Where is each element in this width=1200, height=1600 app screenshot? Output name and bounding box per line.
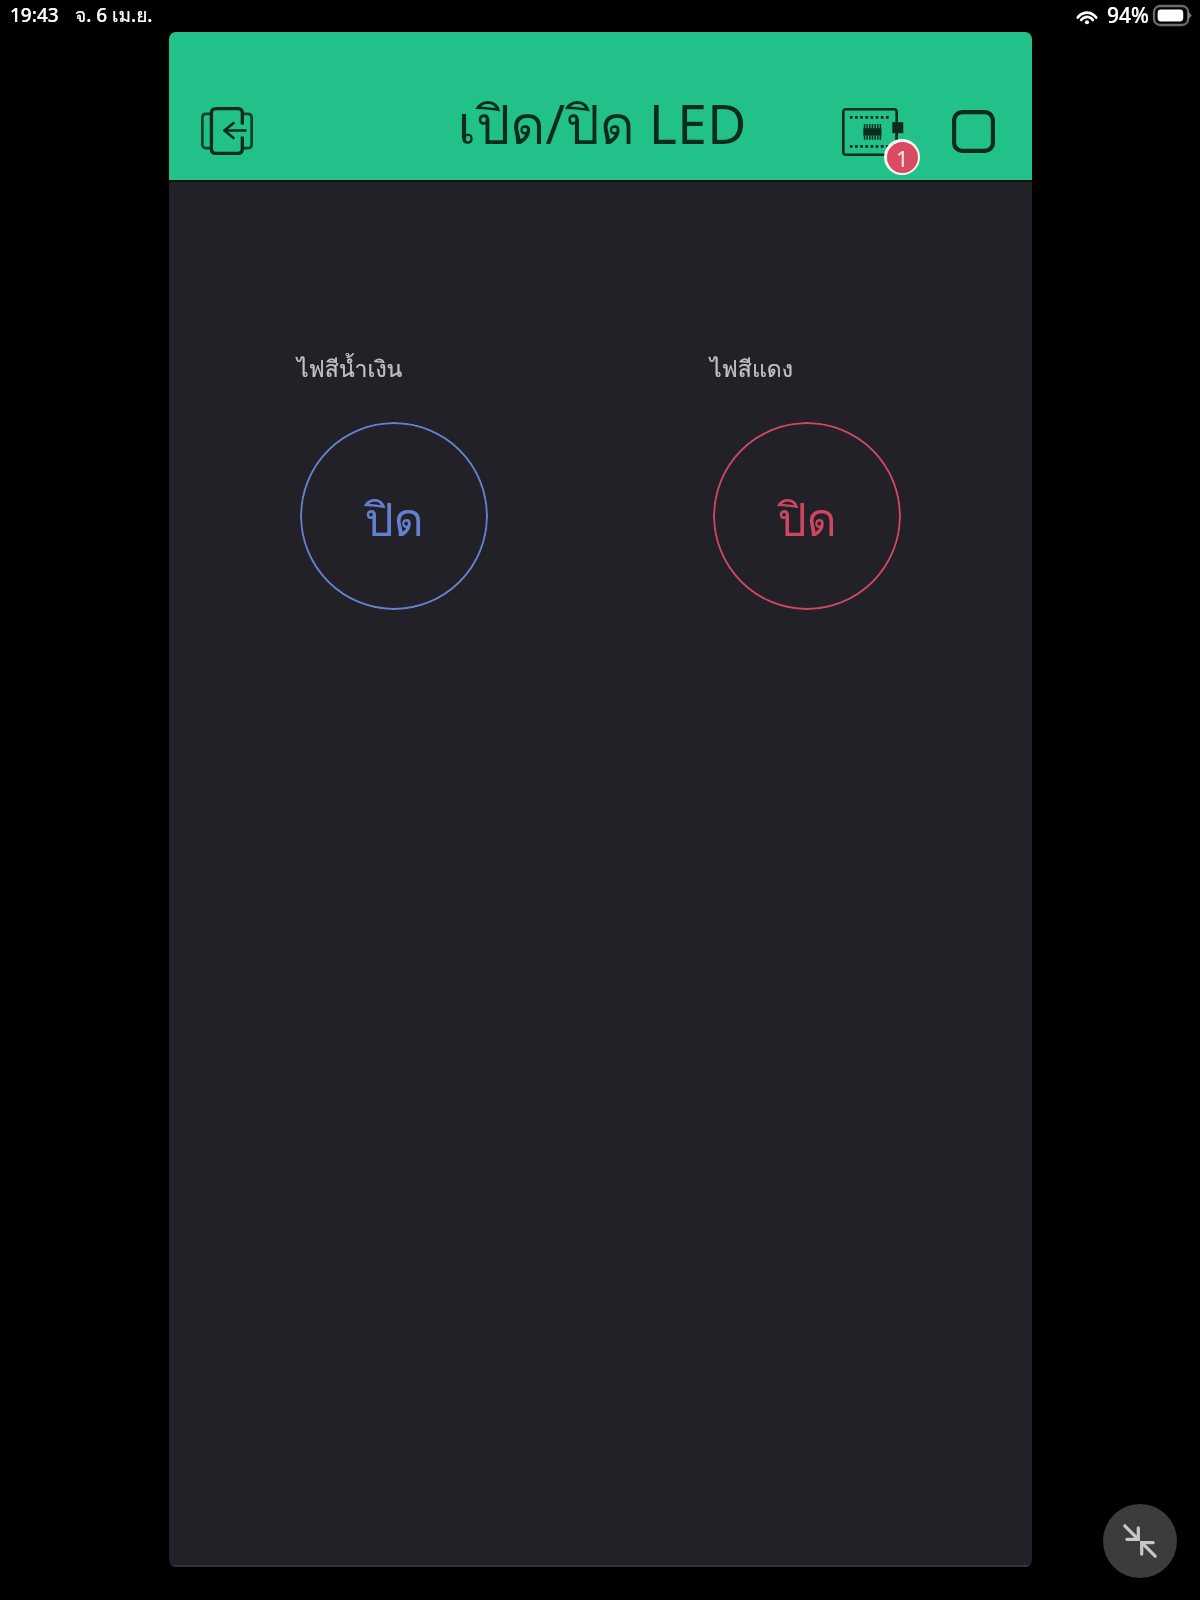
- staticText: ปิด: [777, 483, 837, 556]
- staticText: จ. 6 เม.ย.: [75, 0, 153, 30]
- staticText: ปิด: [364, 483, 424, 556]
- button[interactable]: Device board: [837, 102, 913, 178]
- staticText: 94%: [1107, 1, 1149, 30]
- staticText: ไฟสีแดง: [710, 351, 793, 388]
- button[interactable]: ปิด: [713, 422, 901, 610]
- button[interactable]: Stop: [941, 99, 1005, 163]
- staticText: 19:43: [10, 2, 59, 28]
- staticText: ไฟสีน้ำเงิน: [297, 351, 403, 388]
- button[interactable]: Exit app: [195, 99, 259, 163]
- staticText: 1: [896, 143, 909, 173]
- button[interactable]: Collapse: [1103, 1504, 1177, 1578]
- staticText: เปิด/ปิด LED: [457, 82, 747, 168]
- button[interactable]: ปิด: [300, 422, 488, 610]
